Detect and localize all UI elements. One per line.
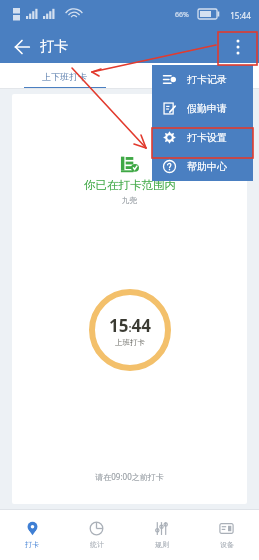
staticText: 打卡设置 [187,131,227,144]
button[interactable]: 统计 [64,510,129,560]
staticText: 打卡 [40,38,68,56]
button[interactable]: 帮助中心 [152,152,253,181]
staticText: 规则 [155,540,169,549]
staticText: 打卡记录 [187,73,227,86]
button[interactable]: 打卡 [0,510,64,560]
staticText: 统计 [90,540,104,549]
button[interactable]: 设备 [194,510,259,560]
staticText: 15:44 [230,10,251,21]
staticText: 假勤申请 [187,102,227,115]
staticText: 打卡 [25,540,39,549]
button[interactable]: 假勤申请 [152,94,253,123]
staticText: 上班打卡 [115,338,145,347]
staticText: 请在09:00之前打卡 [95,471,164,482]
button[interactable]: 打卡记录 [152,65,253,94]
staticText: 你已在打卡范围内 [84,178,176,192]
button[interactable]: 打卡设置 [152,123,253,152]
button[interactable]: Back [9,34,35,60]
button[interactable]: 上下班打卡 [0,63,129,89]
button[interactable]: 15:44 [89,289,171,371]
staticText: 九尧 [122,196,137,205]
staticText: 设备 [220,540,234,549]
staticText: 15:44 [109,314,151,337]
button[interactable]: More options [223,32,253,62]
staticText: 66% [175,10,189,20]
button[interactable]: 规则 [129,510,194,560]
staticText: 帮助中心 [187,160,227,173]
staticText: 上下班打卡 [42,71,87,82]
